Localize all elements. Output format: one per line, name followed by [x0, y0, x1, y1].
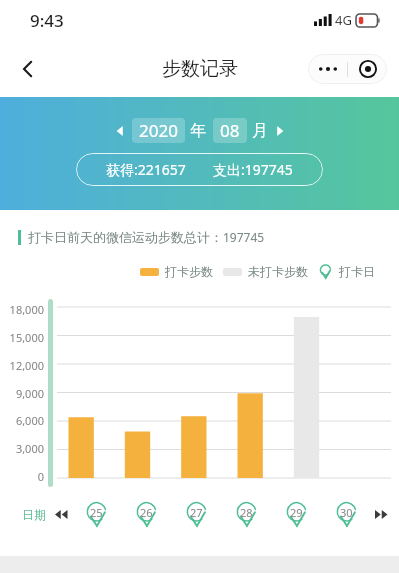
button[interactable]: Target [348, 54, 387, 84]
button[interactable]: More options [308, 54, 347, 84]
staticText: 年 [190, 121, 206, 141]
staticText: 26 [140, 505, 153, 520]
button[interactable]: 29 [271, 497, 321, 531]
staticText: 打卡步数 [165, 264, 213, 279]
staticText: 未打卡步数 [248, 264, 308, 279]
staticText: 9:43 [30, 9, 64, 32]
button[interactable]: 08 [220, 119, 240, 142]
staticText: 30 [340, 505, 353, 520]
button[interactable]: 28 [221, 497, 271, 531]
button[interactable]: 30 [321, 497, 371, 531]
staticText: 打卡日前天的微信运动步数总计： [28, 229, 223, 245]
staticText: 3,000 [15, 441, 44, 456]
staticText: 08 [220, 119, 240, 142]
button[interactable]: 2020 [139, 119, 178, 142]
staticText: 9,000 [15, 386, 44, 401]
button[interactable]: Previous days [51, 504, 71, 524]
staticText: 25 [90, 505, 103, 520]
staticText: 15,000 [9, 330, 44, 345]
staticText: 2020 [139, 119, 178, 142]
staticText: 支出:197745 [213, 160, 293, 179]
staticText: 197745 [223, 229, 265, 245]
button[interactable]: 25 [71, 497, 121, 531]
button[interactable]: 获得:221657 [106, 160, 293, 179]
staticText: 29 [290, 505, 303, 520]
staticText: 日期 [22, 507, 46, 522]
staticText: 18,000 [9, 302, 44, 317]
button[interactable]: Previous month [108, 119, 132, 143]
staticText: 12,000 [9, 358, 44, 373]
button[interactable]: Next days [371, 504, 391, 524]
button[interactable]: Next month [268, 119, 292, 143]
staticText: 月 [252, 121, 268, 141]
staticText: 28 [240, 505, 253, 520]
staticText: 27 [190, 505, 203, 520]
staticText: 获得:221657 [106, 160, 186, 179]
staticText: 6,000 [15, 413, 44, 428]
staticText: 4G [335, 11, 352, 29]
button[interactable]: Back [8, 49, 48, 89]
button[interactable]: 26 [121, 497, 171, 531]
staticText: 步数记录 [162, 57, 238, 81]
staticText: 0 [37, 469, 44, 484]
staticText: 打卡日 [339, 264, 375, 279]
button[interactable]: 27 [171, 497, 221, 531]
